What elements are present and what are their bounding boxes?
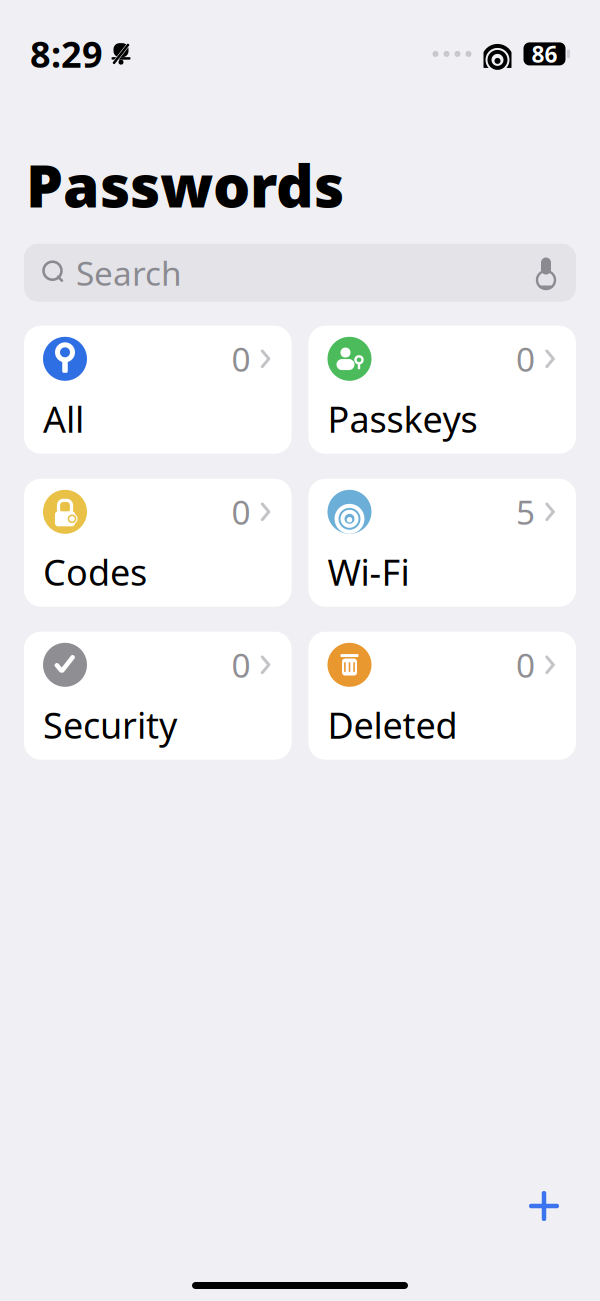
button[interactable]: 0 <box>308 632 576 760</box>
staticText: All <box>43 395 84 443</box>
staticText: 0 <box>516 337 535 381</box>
staticText: Deleted <box>327 701 457 749</box>
staticText: Passkeys <box>327 395 477 443</box>
staticText: 0 <box>231 337 250 381</box>
staticText: Security <box>43 701 177 749</box>
button[interactable]: 5 <box>308 479 576 607</box>
staticText: 5 <box>516 490 535 534</box>
button[interactable]: Add password <box>516 1178 572 1234</box>
button[interactable]: 0 <box>24 632 291 760</box>
staticText: Wi-Fi <box>327 548 409 596</box>
button[interactable]: 0 <box>24 326 291 454</box>
staticText: 0 <box>231 490 250 534</box>
staticText: Search <box>76 251 182 295</box>
staticText: 86 <box>531 39 557 69</box>
staticText: 8:29 <box>30 30 103 78</box>
button[interactable]: Search <box>24 244 576 302</box>
button[interactable]: 0 <box>24 479 291 607</box>
staticText: Passwords <box>26 146 344 224</box>
staticText: Codes <box>43 548 147 596</box>
button[interactable]: 0 <box>308 326 576 454</box>
staticText: 0 <box>231 643 250 687</box>
staticText: 0 <box>516 643 535 687</box>
